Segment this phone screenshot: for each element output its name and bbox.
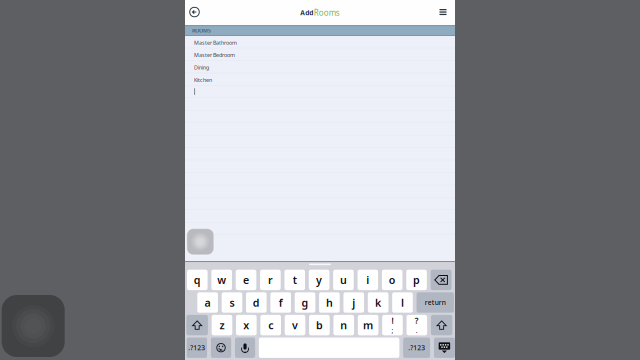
- staticText: u: [340, 273, 347, 287]
- button[interactable]: Emoji: [211, 337, 231, 358]
- staticText: z: [219, 318, 224, 332]
- staticText: b: [316, 318, 323, 332]
- button[interactable]: x: [236, 315, 257, 335]
- button[interactable]: Shift: [186, 315, 208, 335]
- staticText: i: [366, 273, 369, 287]
- staticText: .?123: [188, 343, 205, 352]
- button[interactable]: return: [416, 292, 454, 313]
- staticText: h: [326, 295, 333, 310]
- staticText: o: [389, 273, 396, 287]
- button[interactable]: o: [382, 270, 402, 290]
- button[interactable]: g: [295, 292, 315, 313]
- staticText: !: [391, 315, 393, 326]
- button[interactable]: Delete: [431, 270, 452, 290]
- staticText: q: [194, 273, 201, 287]
- button[interactable]: h: [319, 292, 340, 313]
- button[interactable]: w: [211, 270, 232, 290]
- button[interactable]: Shift: [431, 315, 452, 335]
- button[interactable]: d: [246, 292, 267, 313]
- button[interactable]: e: [236, 270, 256, 290]
- staticText: Kitchen: [194, 76, 212, 83]
- staticText: v: [292, 318, 298, 332]
- button[interactable]: q: [187, 270, 208, 290]
- staticText: n: [340, 318, 347, 332]
- button[interactable]: AssistiveTouch: [187, 229, 214, 255]
- button[interactable]: b: [309, 315, 330, 335]
- staticText: l: [401, 295, 404, 310]
- staticText: s: [229, 295, 234, 310]
- button[interactable]: f: [270, 292, 291, 313]
- staticText: Add: [300, 8, 313, 17]
- button[interactable]: k: [368, 292, 388, 313]
- staticText: Master Bedroom: [194, 51, 235, 59]
- staticText: a: [205, 295, 211, 310]
- button[interactable]: ?: [406, 315, 427, 335]
- staticText: k: [375, 295, 381, 310]
- button[interactable]: .?123: [403, 337, 430, 358]
- button[interactable]: p: [406, 270, 427, 290]
- button[interactable]: a: [197, 292, 218, 313]
- staticText: e: [243, 273, 249, 287]
- button[interactable]: i: [357, 270, 378, 290]
- staticText: ROOMS: [192, 27, 211, 34]
- button[interactable]: v: [285, 315, 305, 335]
- staticText: d: [253, 295, 260, 310]
- staticText: w: [217, 273, 226, 287]
- button[interactable]: AssistiveTouch: [2, 295, 65, 357]
- button[interactable]: Dictation: [235, 337, 255, 358]
- button[interactable]: y: [309, 270, 329, 290]
- staticText: c: [268, 318, 273, 332]
- staticText: Master Bathroom: [194, 39, 237, 46]
- staticText: g: [301, 295, 308, 310]
- button[interactable]: Back: [185, 1, 204, 24]
- staticText: .: [416, 326, 418, 335]
- button[interactable]: u: [333, 270, 354, 290]
- staticText: y: [316, 273, 322, 287]
- button[interactable]: c: [260, 315, 281, 335]
- button[interactable]: t: [284, 270, 305, 290]
- staticText: ?: [415, 315, 419, 326]
- staticText: m: [363, 318, 373, 332]
- staticText: .?123: [408, 343, 425, 352]
- button[interactable]: m: [358, 315, 378, 335]
- staticText: return: [425, 298, 446, 307]
- button[interactable]: Menu: [434, 1, 451, 24]
- button[interactable]: z: [212, 315, 232, 335]
- button[interactable]: s: [222, 292, 242, 313]
- button[interactable]: l: [392, 292, 413, 313]
- button[interactable]: Hide keyboard: [434, 337, 455, 358]
- button[interactable]: !: [382, 315, 403, 335]
- staticText: j: [352, 295, 355, 310]
- staticText: t: [293, 273, 297, 287]
- button[interactable]: .?123: [187, 337, 207, 358]
- button[interactable]: j: [343, 292, 364, 313]
- staticText: ;: [391, 326, 393, 335]
- staticText: x: [243, 318, 249, 332]
- staticText: Dining: [194, 64, 209, 71]
- staticText: f: [279, 295, 283, 310]
- staticText: r: [268, 273, 273, 287]
- button[interactable]: r: [260, 270, 281, 290]
- staticText: p: [413, 273, 420, 287]
- button[interactable]: n: [333, 315, 354, 335]
- staticText: Rooms: [314, 7, 340, 18]
